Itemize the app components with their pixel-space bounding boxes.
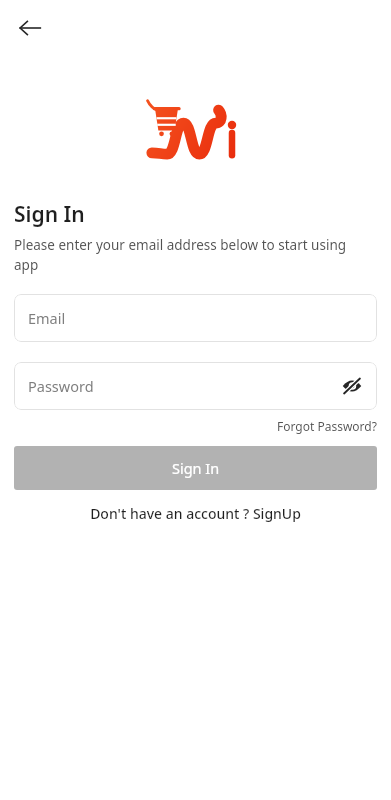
button[interactable]: Don't have an account ? SignUp — [90, 504, 301, 523]
button[interactable]: Back — [8, 6, 52, 50]
button[interactable]: Email — [14, 294, 377, 342]
button[interactable]: Password — [14, 362, 377, 410]
staticText: Email — [28, 308, 365, 328]
staticText: Sign In — [172, 458, 220, 478]
button[interactable]: Toggle password visibility — [339, 373, 365, 399]
staticText: Password — [28, 376, 339, 396]
staticText: Forgot Password? — [277, 418, 377, 434]
staticText: Don't have an account ? SignUp — [90, 504, 301, 523]
button[interactable]: Forgot Password? — [277, 418, 377, 434]
staticText: Sign In — [14, 200, 85, 229]
button[interactable]: Sign In — [14, 446, 377, 490]
staticText: Please enter your email address below to… — [14, 236, 369, 274]
